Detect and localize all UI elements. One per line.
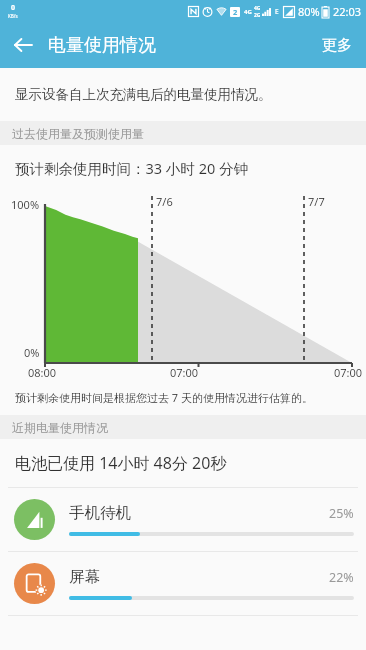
button[interactable]: 手机待机 [0, 488, 366, 551]
staticText: 手机待机 [69, 503, 329, 523]
staticText: 电池已使用 14小时 48分 20秒 [15, 452, 227, 474]
staticText: 预计剩余使用时间：33 小时 20 分钟 [15, 158, 248, 178]
button[interactable]: Back [0, 22, 46, 68]
staticText: KB/s [8, 13, 18, 19]
button[interactable]: 屏幕 [0, 552, 366, 615]
staticText: 22% [329, 569, 354, 586]
staticText: 过去使用量及预测使用量 [12, 126, 144, 141]
staticText: 07:00 [334, 365, 363, 380]
staticText: 预计剩余使用时间是根据您过去 7 天的使用情况进行估算的。 [15, 390, 314, 405]
staticText: 更多 [322, 36, 352, 55]
staticText: 屏幕 [69, 567, 329, 587]
staticText: 7/7 [308, 194, 325, 209]
staticText: 2G [254, 12, 261, 19]
staticText: 4G [254, 5, 261, 12]
staticText: 近期电量使用情况 [12, 420, 108, 435]
button[interactable]: 更多 [308, 22, 366, 68]
staticText: E [275, 7, 279, 16]
staticText: 08:00 [28, 365, 57, 380]
staticText: 7/6 [156, 194, 173, 209]
staticText: 显示设备自上次充满电后的电量使用情况。 [15, 86, 272, 103]
staticText: 25% [329, 505, 354, 522]
staticText: 电量使用情况 [48, 34, 156, 57]
staticText: 80% [298, 4, 320, 19]
staticText: 100% [11, 197, 40, 212]
staticText: 22:03 [333, 4, 362, 19]
staticText: 4G [244, 8, 252, 16]
staticText: 07:00 [170, 365, 199, 380]
staticText: 0 [11, 3, 16, 13]
staticText: 2 [233, 7, 238, 17]
staticText: 0% [24, 345, 40, 360]
